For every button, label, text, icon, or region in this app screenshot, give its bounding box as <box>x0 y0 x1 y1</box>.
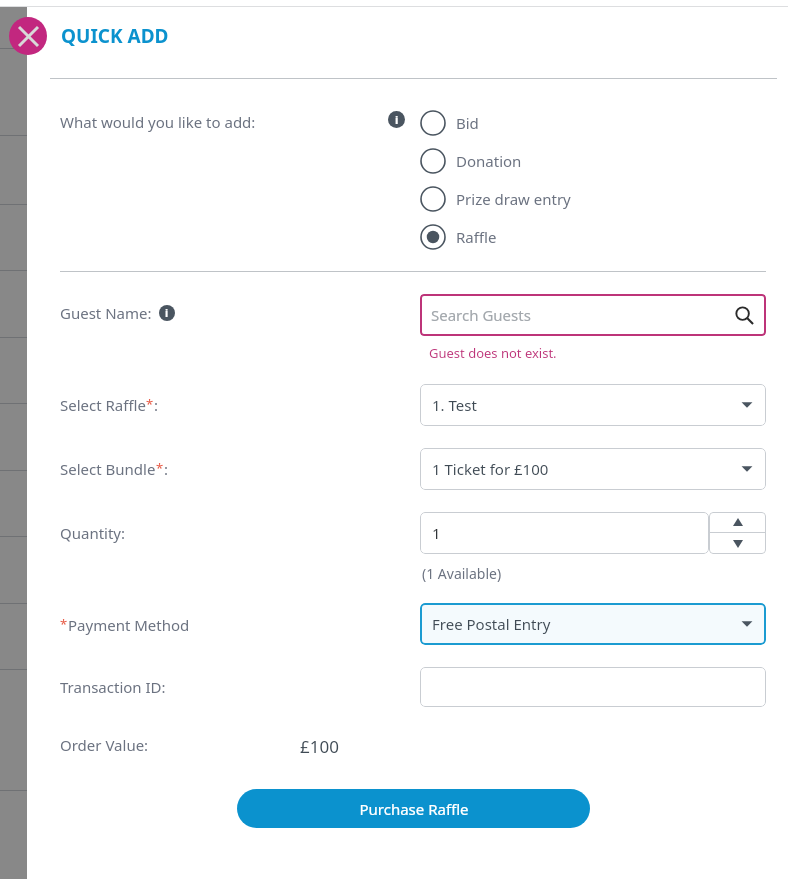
staticText: * <box>156 459 164 477</box>
button[interactable]: Donation <box>420 142 522 180</box>
staticText: What would you like to add: <box>60 112 256 132</box>
button[interactable]: 1 <box>420 512 709 554</box>
other: Information <box>159 305 175 321</box>
button[interactable] <box>420 667 766 707</box>
staticText: Search Guests <box>431 305 531 325</box>
staticText: Bid <box>456 113 479 133</box>
staticText: * <box>60 615 68 633</box>
button[interactable]: Close <box>9 17 47 55</box>
staticText: 1 <box>432 523 441 543</box>
staticText: Order Value: <box>60 735 149 755</box>
staticText: Payment Method <box>68 615 190 635</box>
staticText: : <box>164 459 169 479</box>
staticText: i <box>395 112 399 127</box>
staticText: * <box>146 395 154 413</box>
staticText: QUICK ADD <box>61 23 169 49</box>
staticText: 1 Ticket for £100 <box>432 459 549 479</box>
staticText: Select Raffle <box>60 395 146 415</box>
staticText: Raffle <box>456 227 497 247</box>
button[interactable]: Prize draw entry <box>420 180 571 218</box>
staticText: : <box>154 395 159 415</box>
staticText: Guest Name: <box>60 303 152 323</box>
staticText: Transaction ID: <box>60 677 166 697</box>
button[interactable]: Raffle <box>420 218 497 256</box>
staticText: Donation <box>456 151 522 171</box>
button[interactable]: Search Guests <box>420 294 766 336</box>
button[interactable]: 1 Ticket for £100 <box>420 448 766 490</box>
staticText: Purchase Raffle <box>359 799 469 819</box>
staticText: 1. Test <box>432 395 477 415</box>
button[interactable]: Decrease quantity <box>709 533 766 554</box>
button[interactable]: Search <box>733 304 755 326</box>
staticText: (1 Available) <box>422 564 502 583</box>
button[interactable]: Bid <box>420 104 479 142</box>
staticText: Quantity: <box>60 523 126 543</box>
other: Information <box>388 111 405 128</box>
staticText: Guest does not exist. <box>429 344 557 362</box>
staticText: Select Bundle <box>60 459 156 479</box>
staticText: Free Postal Entry <box>432 614 551 634</box>
button[interactable]: Increase quantity <box>709 512 766 532</box>
staticText: £100 <box>300 735 339 758</box>
button[interactable]: Purchase Raffle <box>237 789 590 828</box>
staticText: i <box>165 306 169 320</box>
button[interactable]: Free Postal Entry <box>420 603 766 645</box>
button[interactable]: 1. Test <box>420 384 766 426</box>
staticText: Prize draw entry <box>456 189 571 209</box>
